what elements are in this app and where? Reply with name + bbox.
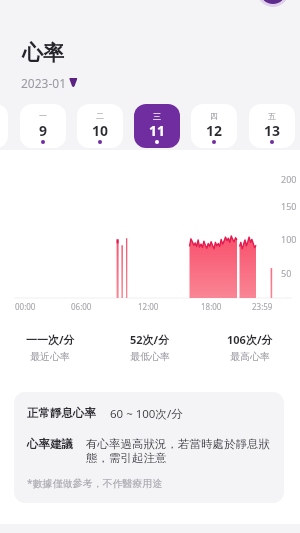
staticText: 一: [39, 111, 47, 121]
staticText: 00:00: [15, 301, 36, 312]
staticText: 有心率過高狀況，若當時處於靜息狀態，需引起注意: [86, 437, 272, 466]
staticText: 106次/分: [227, 332, 273, 347]
staticText: 23:59: [252, 301, 273, 312]
button[interactable]: 二: [77, 104, 123, 148]
button[interactable]: 三: [134, 104, 180, 148]
staticText: 12:00: [138, 301, 159, 312]
staticText: 最高心率: [230, 350, 270, 363]
staticText: 200: [281, 173, 297, 185]
staticText: 心率建議: [27, 437, 73, 451]
staticText: 150: [281, 200, 297, 212]
button[interactable]: 五: [249, 104, 295, 148]
staticText: 12: [206, 121, 223, 140]
staticText: 最近心率: [30, 350, 70, 363]
staticText: 心率: [22, 40, 64, 66]
button[interactable]: 2023-01: [21, 75, 78, 91]
button[interactable]: 四: [191, 104, 237, 148]
button[interactable]: 日: [0, 104, 8, 148]
staticText: 52次/分: [130, 332, 170, 347]
staticText: 50: [281, 267, 292, 279]
button[interactable]: 一: [20, 104, 66, 148]
staticText: 四: [210, 111, 218, 121]
staticText: 13: [264, 121, 281, 140]
staticText: 最低心率: [130, 350, 170, 363]
staticText: 06:00: [71, 301, 92, 312]
staticText: 三: [153, 111, 161, 121]
staticText: 9: [39, 121, 48, 140]
staticText: 10: [92, 121, 109, 140]
staticText: 二: [96, 111, 104, 121]
staticText: 五: [268, 111, 276, 121]
staticText: 18:00: [201, 301, 222, 312]
staticText: 11: [149, 121, 166, 140]
button[interactable]: 正常靜息心率: [14, 392, 284, 503]
staticText: 正常靜息心率: [27, 406, 96, 420]
staticText: 100: [281, 233, 297, 245]
staticText: *數據僅做參考，不作醫療用途: [27, 476, 163, 490]
staticText: 一一次/分: [26, 332, 75, 347]
staticText: 2023-01: [21, 75, 67, 91]
button[interactable]: Profile: [257, 0, 289, 7]
staticText: 60 ~ 100次/分: [110, 406, 183, 422]
